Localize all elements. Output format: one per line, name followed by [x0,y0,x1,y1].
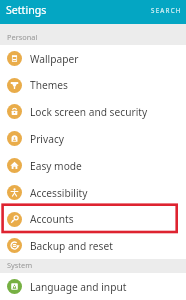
staticText: Accounts [30,212,74,226]
button[interactable]: Language and input [0,273,186,300]
button[interactable]: Accessibility [0,179,186,206]
staticText: Lock screen and security [30,105,148,119]
staticText: Backup and reset [30,239,113,253]
staticText: Wallpaper [30,52,79,66]
button[interactable]: SEARCH [145,3,186,21]
staticText: System [7,260,33,270]
staticText: Accessibility [30,186,88,200]
staticText: Privacy [30,132,64,146]
staticText: Language and input [30,280,127,294]
button[interactable]: Privacy [0,125,186,152]
staticText: Settings [6,3,47,17]
button[interactable]: Themes [0,72,186,98]
button[interactable]: Backup and reset [0,232,186,259]
staticText: Easy mode [30,159,82,173]
button[interactable]: Accounts [0,206,186,232]
staticText: Themes [30,78,68,92]
button[interactable]: Wallpaper [0,45,186,72]
button[interactable]: Lock screen and security [0,98,186,125]
staticText: Personal [7,32,38,42]
button[interactable]: Easy mode [0,152,186,179]
staticText: SEARCH [151,6,182,14]
